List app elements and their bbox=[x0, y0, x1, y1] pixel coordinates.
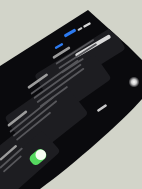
button[interactable]: Toggle setting bbox=[29, 149, 49, 167]
button[interactable]: Back bbox=[62, 27, 82, 40]
